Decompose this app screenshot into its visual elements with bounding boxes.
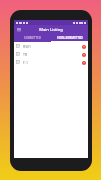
button[interactable]: RS01 xyxy=(14,42,88,50)
button[interactable]: F-1 xyxy=(14,58,88,66)
staticText: RS01 xyxy=(23,44,32,49)
button[interactable]: Delete xyxy=(81,60,86,65)
button[interactable]: SUBMITTED xyxy=(14,34,51,41)
button[interactable]: Menu xyxy=(16,27,22,33)
button[interactable]: Delete xyxy=(81,52,86,57)
staticText: SUBMITTED xyxy=(24,36,41,40)
staticText: F-1 xyxy=(23,60,28,65)
button[interactable]: NON-SUBMITTED xyxy=(51,34,88,41)
staticText: TR xyxy=(23,52,28,57)
staticText: Main Listing xyxy=(39,27,63,32)
staticText: NON-SUBMITTED xyxy=(57,36,83,40)
button[interactable]: TR xyxy=(14,50,88,58)
button[interactable]: Delete xyxy=(81,44,86,49)
